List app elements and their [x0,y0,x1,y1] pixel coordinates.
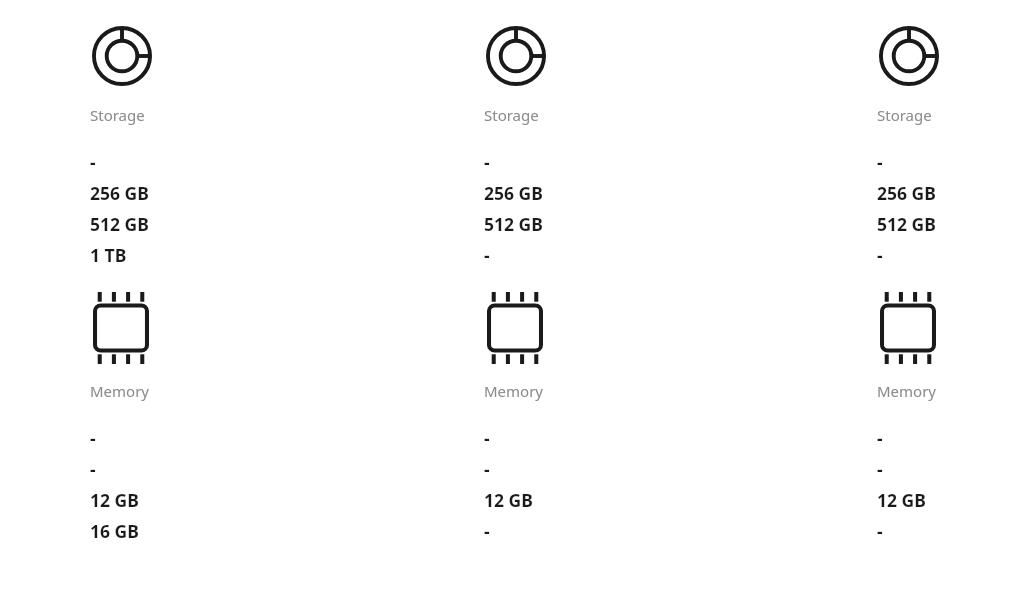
staticText: Storage [877,105,932,125]
button[interactable]: Memory [90,380,230,402]
button[interactable]: 16 GB [90,515,230,546]
other: Storage [92,26,152,86]
staticText: - [484,426,490,450]
staticText: - [877,519,883,543]
button[interactable]: 256 GB [90,177,230,208]
button[interactable]: - [877,239,1017,270]
staticText: - [484,457,490,481]
button[interactable]: - [484,515,624,546]
staticText: 16 GB [90,519,139,543]
staticText: 1 TB [90,243,127,267]
other: Memory [93,292,149,364]
staticText: Memory [90,381,150,401]
button[interactable]: 256 GB [877,177,1017,208]
staticText: Memory [484,381,544,401]
other: Memory [487,292,543,364]
button[interactable]: - [484,422,624,453]
button[interactable]: - [90,453,230,484]
staticText: - [90,426,96,450]
staticText: 512 GB [484,212,543,236]
staticText: 256 GB [877,181,936,205]
staticText: 256 GB [484,181,543,205]
staticText: 12 GB [484,488,533,512]
staticText: - [877,243,883,267]
button[interactable]: - [90,146,230,177]
other: Storage [879,26,939,86]
staticText: - [877,457,883,481]
button[interactable]: - [877,422,1017,453]
button[interactable]: 12 GB [90,484,230,515]
staticText: 256 GB [90,181,149,205]
button[interactable]: 12 GB [877,484,1017,515]
button[interactable]: - [877,453,1017,484]
staticText: 512 GB [877,212,936,236]
button[interactable]: 512 GB [877,208,1017,239]
button[interactable]: 256 GB [484,177,624,208]
button[interactable]: 1 TB [90,239,230,270]
button[interactable]: 512 GB [90,208,230,239]
button[interactable]: 12 GB [484,484,624,515]
other: Storage [486,26,546,86]
other: Memory [880,292,936,364]
button[interactable]: Memory [877,380,1017,402]
button[interactable]: Storage [484,104,624,126]
staticText: Storage [484,105,539,125]
button[interactable]: - [484,239,624,270]
button[interactable]: Storage [877,104,1017,126]
staticText: - [484,243,490,267]
staticText: Storage [90,105,145,125]
staticText: - [877,426,883,450]
staticText: - [877,150,883,174]
staticText: 12 GB [877,488,926,512]
button[interactable]: - [877,146,1017,177]
button[interactable]: - [484,146,624,177]
button[interactable]: - [484,453,624,484]
staticText: 512 GB [90,212,149,236]
button[interactable]: - [877,515,1017,546]
staticText: Memory [877,381,937,401]
staticText: - [484,150,490,174]
button[interactable]: - [90,422,230,453]
staticText: - [90,457,96,481]
staticText: 12 GB [90,488,139,512]
button[interactable]: 512 GB [484,208,624,239]
staticText: - [484,519,490,543]
button[interactable]: Storage [90,104,230,126]
button[interactable]: Memory [484,380,624,402]
staticText: - [90,150,96,174]
